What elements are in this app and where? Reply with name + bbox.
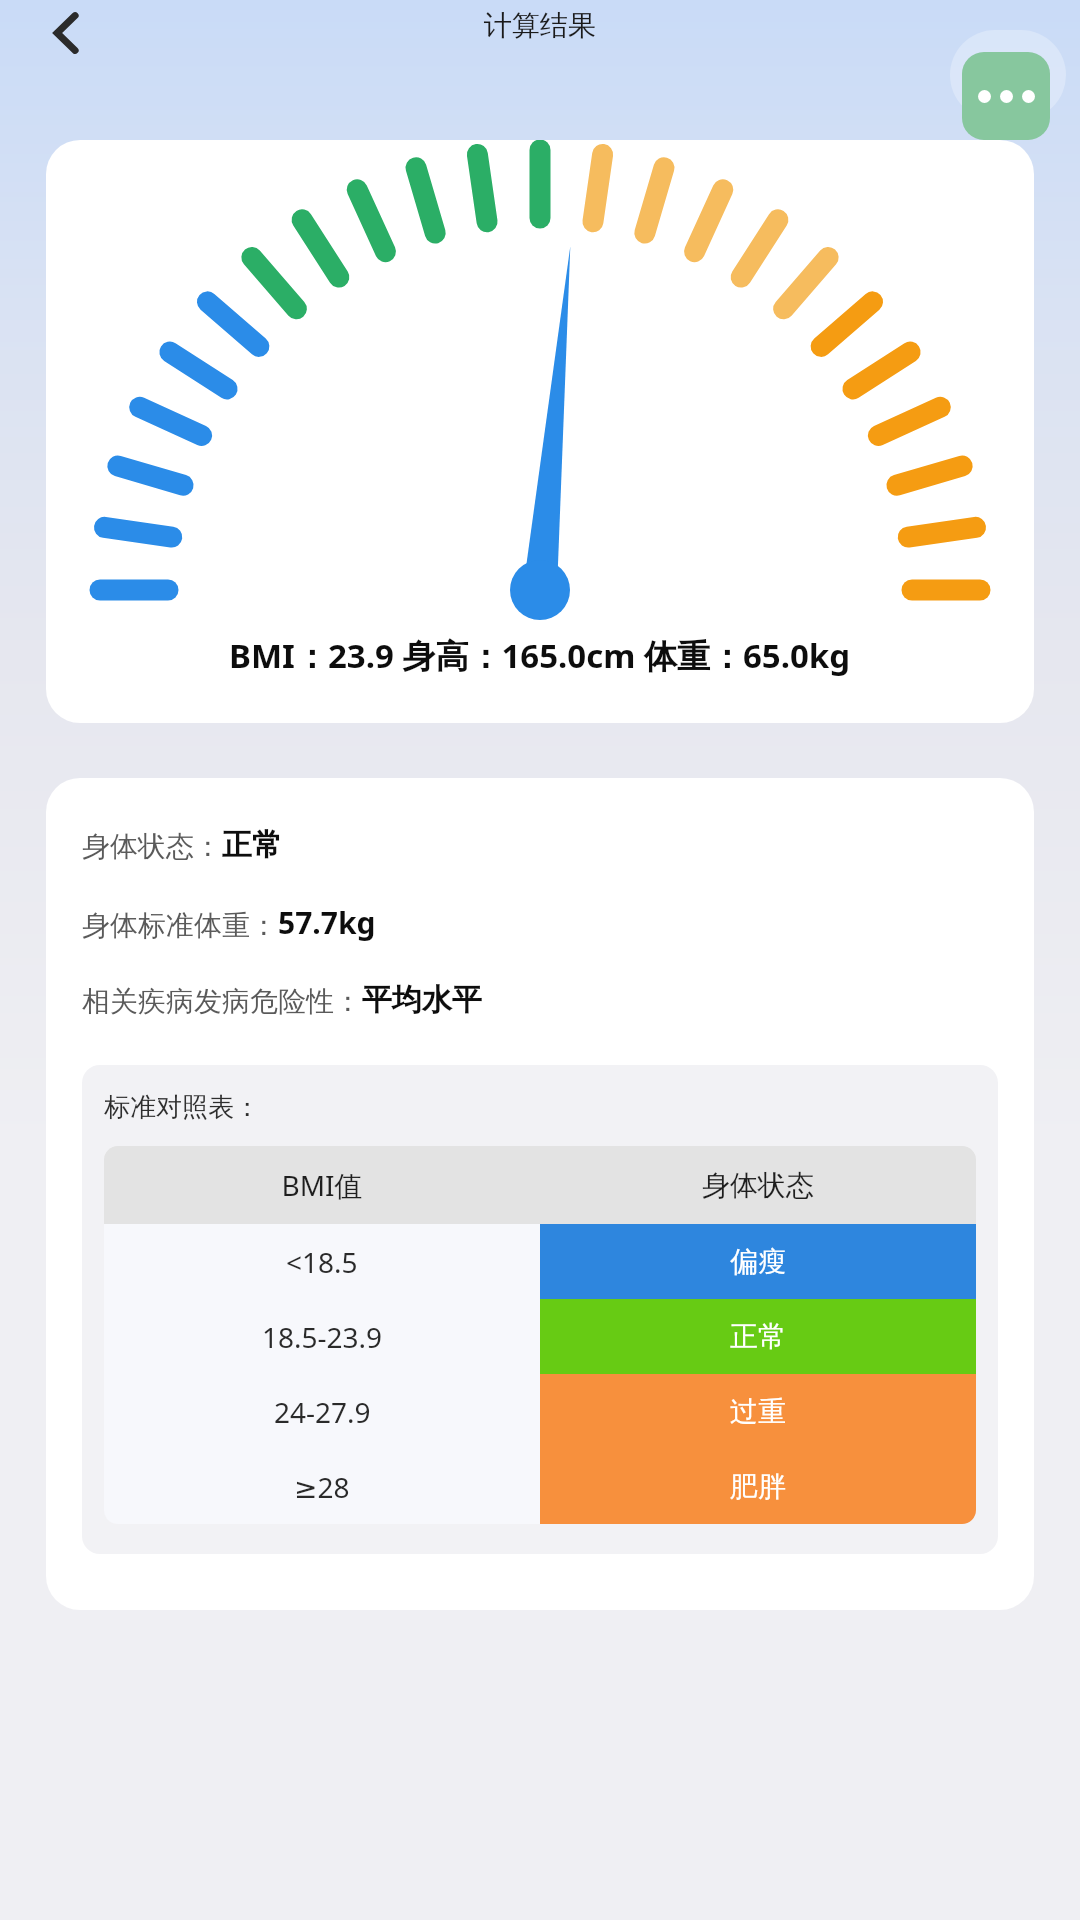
staticText: 正常 [222, 826, 282, 864]
staticText: 18.5-23.9 [262, 1318, 383, 1356]
staticText: ≥28 [294, 1468, 350, 1506]
staticText: 过重 [730, 1394, 786, 1429]
button[interactable]: 返回 [38, 4, 96, 62]
staticText: 身体状态： [82, 829, 222, 864]
staticText: <18.5 [286, 1243, 358, 1281]
staticText: 身体状态 [540, 1168, 976, 1203]
staticText: 标准对照表： [104, 1091, 260, 1124]
staticText: 偏瘦 [730, 1244, 786, 1279]
staticText: 24-27.9 [274, 1393, 371, 1431]
staticText: 相关疾病发病危险性： [82, 984, 362, 1019]
staticText: BMI值 [104, 1166, 540, 1204]
staticText: 计算结果 [484, 8, 596, 43]
button[interactable]: 更多 [962, 52, 1050, 140]
staticText: 57.7kg [278, 902, 376, 943]
staticText: 肥胖 [730, 1469, 786, 1504]
staticText: 平均水平 [362, 981, 482, 1019]
staticText: 正常 [730, 1319, 786, 1354]
staticText: BMI：23.9 身高：165.0cm 体重：65.0kg [229, 633, 851, 678]
staticText: 身体标准体重： [82, 908, 278, 943]
